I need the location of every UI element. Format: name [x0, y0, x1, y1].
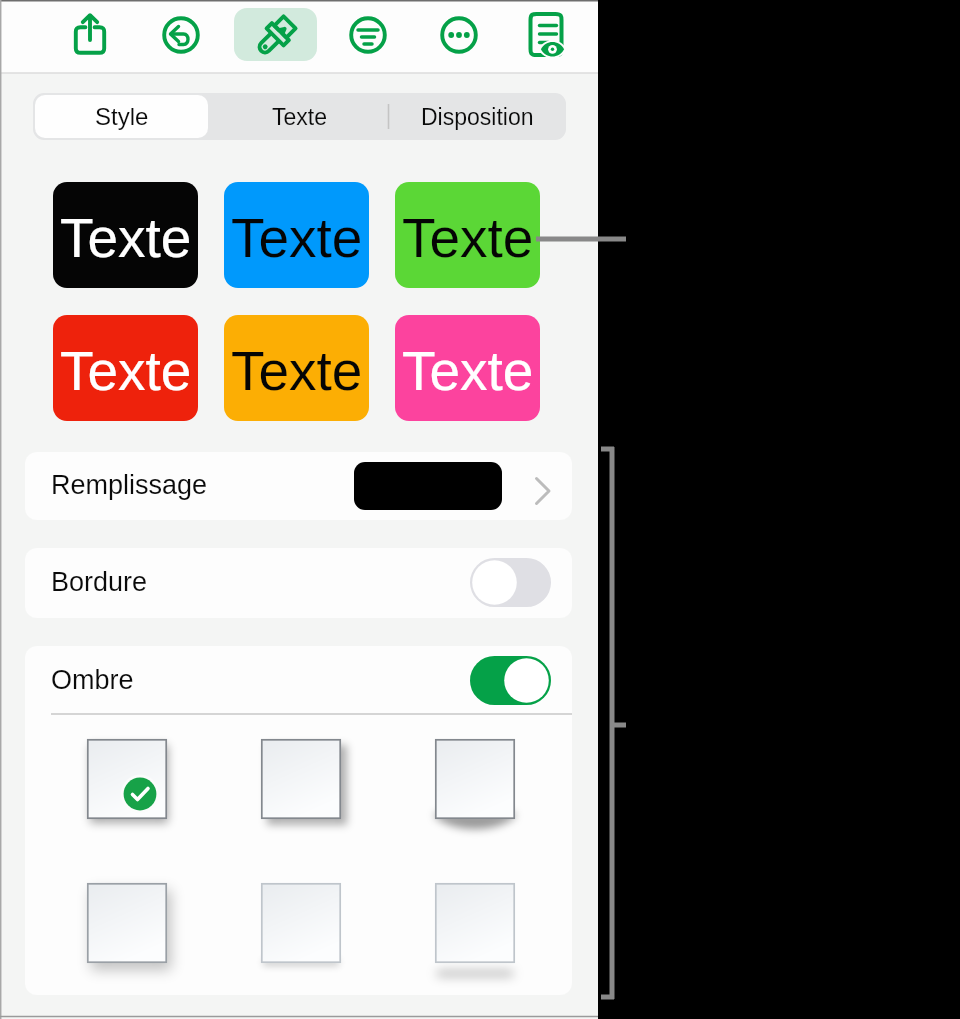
button[interactable]: Undo [155, 9, 207, 61]
staticText: Remplissage [51, 470, 208, 500]
button[interactable]: Bordure [25, 548, 572, 618]
button[interactable]: Texte [53, 182, 198, 288]
staticText: Texte [231, 207, 363, 268]
button[interactable]: Style [35, 95, 208, 138]
staticText: Style [95, 103, 149, 130]
button[interactable]: Texte [224, 182, 369, 288]
staticText: Texte [60, 340, 192, 401]
button[interactable]: Share [64, 9, 116, 61]
button[interactable]: Format [249, 9, 301, 61]
staticText: Texte [272, 104, 327, 130]
button[interactable]: Off [470, 558, 551, 607]
button[interactable]: Texte [395, 182, 540, 288]
button[interactable]: Disposition [388, 93, 566, 140]
staticText: Texte [60, 207, 192, 268]
staticText: Bordure [51, 567, 148, 597]
button[interactable]: Format [234, 8, 317, 61]
button[interactable]: Insert [342, 9, 394, 61]
button[interactable]: Preview [520, 9, 572, 61]
button[interactable]: Texte [395, 315, 540, 421]
staticText: Ombre [51, 665, 134, 695]
staticText: Disposition [421, 104, 534, 130]
button[interactable]: Texte [53, 315, 198, 421]
button[interactable]: Remplissage [25, 452, 572, 520]
button[interactable]: Texte [224, 315, 369, 421]
staticText: Texte [402, 207, 534, 268]
button[interactable]: On [470, 656, 551, 705]
staticText: Texte [231, 340, 363, 401]
button[interactable]: More [433, 9, 485, 61]
staticText: Texte [402, 340, 534, 401]
button[interactable]: Texte [210, 93, 388, 140]
